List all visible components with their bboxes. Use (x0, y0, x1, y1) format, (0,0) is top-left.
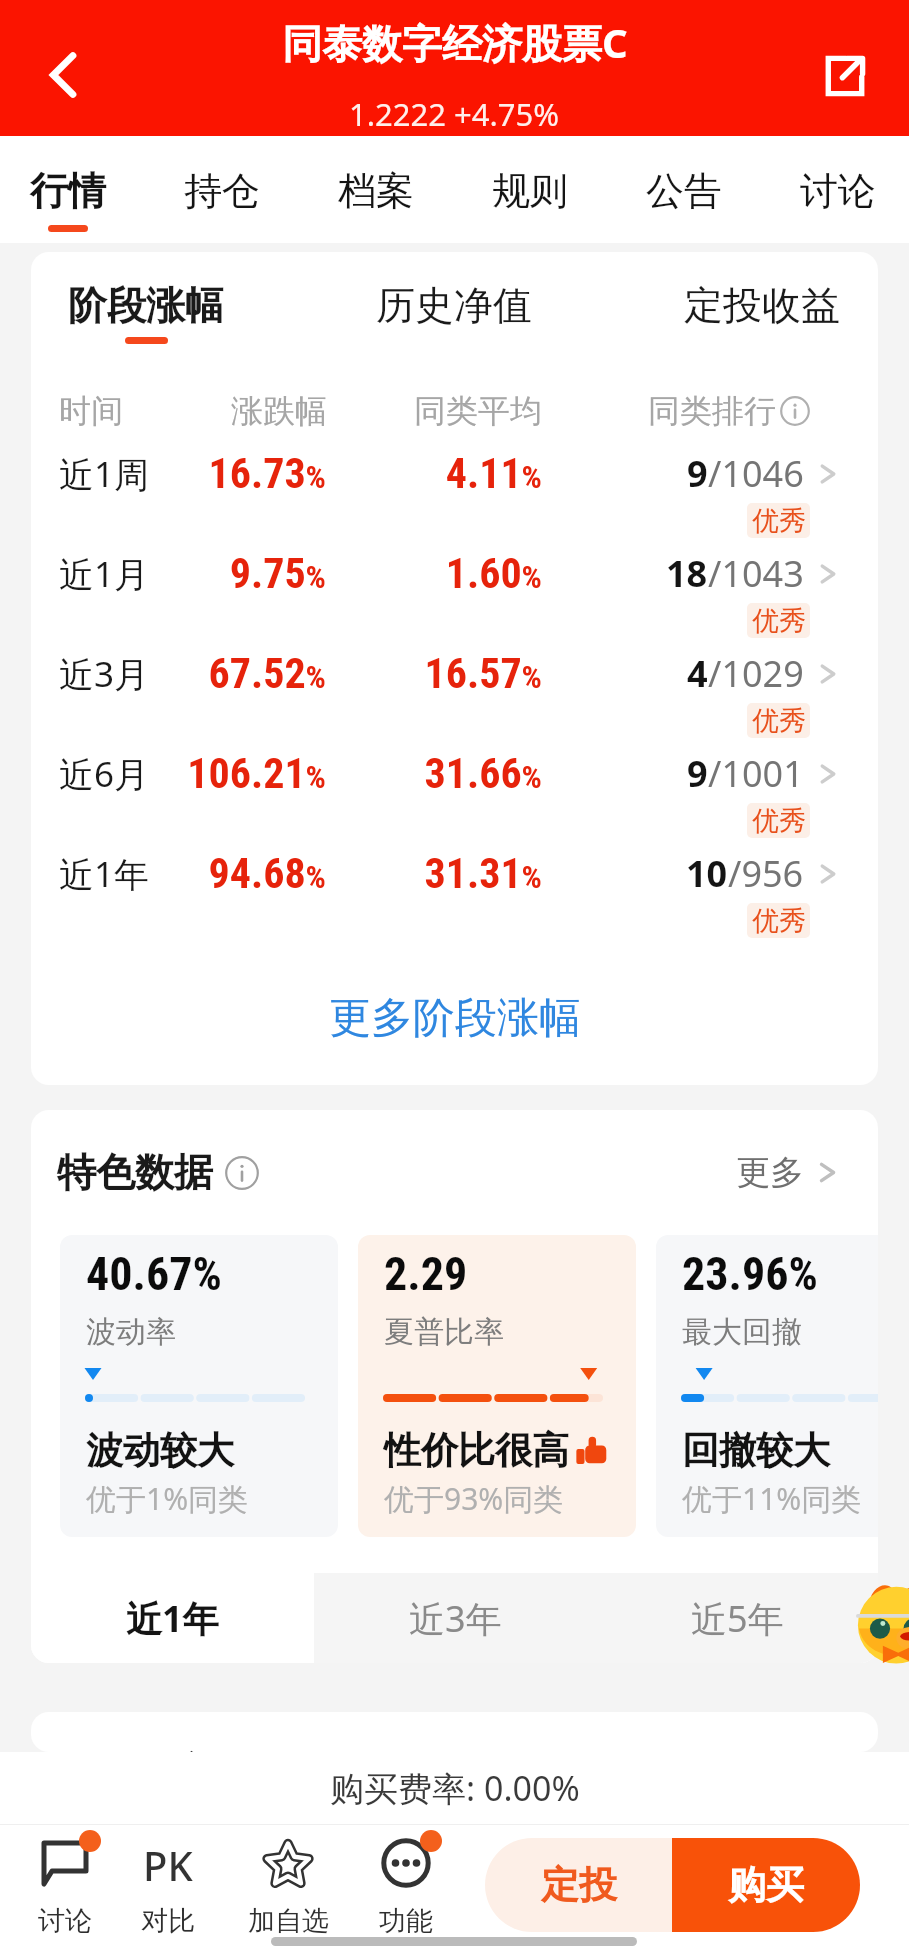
staticText: 16.73% (126, 449, 326, 498)
button[interactable]: More functions (348, 1824, 464, 1937)
staticText: 档案 (338, 167, 414, 215)
button[interactable]: Add to watchlist (230, 1824, 346, 1937)
staticText: 31.31% (342, 849, 542, 898)
other: More functions (381, 1838, 431, 1888)
staticText: 阶段涨幅 (68, 281, 224, 330)
staticText: 同类平均 (342, 391, 542, 431)
staticText: 公告 (646, 167, 722, 215)
staticText: 优于93%同类 (384, 1478, 564, 1519)
staticText: 优秀 (752, 504, 806, 538)
staticText: 优秀 (752, 604, 806, 638)
staticText: 最大回撤 (682, 1313, 802, 1351)
staticText: 同类排行 (648, 391, 776, 431)
button[interactable]: 规则 (453, 136, 607, 243)
staticText: 讨论 (800, 167, 876, 215)
staticText: 波动率 (86, 1313, 176, 1351)
staticText: 同泰数字经济股票C (282, 15, 628, 70)
button[interactable]: 23.96% (656, 1235, 878, 1537)
staticText: PK (143, 1838, 193, 1888)
staticText: 购买费率: 0.00% (330, 1765, 580, 1811)
staticText: 规则 (492, 167, 568, 215)
other: Compare (143, 1838, 193, 1888)
staticText: 历史净值 (376, 281, 532, 330)
button[interactable]: Compare (110, 1824, 226, 1937)
staticText: 9.75% (126, 549, 326, 598)
staticText: 1.2222 +4.75% (349, 93, 560, 133)
staticText: 9 (687, 749, 708, 798)
staticText: 近5年 (691, 1594, 784, 1643)
staticText: 更多阶段涨幅 (329, 992, 581, 1045)
button[interactable]: 近1月 (31, 544, 878, 644)
staticText: 定投 (541, 1861, 617, 1909)
button[interactable]: 2.29 (358, 1235, 636, 1537)
staticText: 近3年 (409, 1594, 502, 1643)
staticText: 近1年 (59, 850, 150, 898)
button[interactable]: Share (807, 38, 883, 114)
staticText: 回撤较大 (682, 1427, 830, 1474)
button[interactable]: 讨论 (761, 136, 909, 243)
button[interactable]: 近3月 (31, 644, 878, 744)
staticText: 94.68% (126, 849, 326, 898)
staticText: 持仓 (184, 167, 260, 215)
staticText: 16.57% (342, 649, 542, 698)
button[interactable]: 持仓 (145, 136, 299, 243)
staticText: 近1月 (59, 550, 150, 598)
button[interactable]: 行情 (0, 136, 145, 243)
button[interactable]: 近3年 (314, 1573, 596, 1663)
staticText: 对比 (141, 1904, 195, 1938)
staticText: /1043 (708, 549, 804, 598)
staticText: 1.60% (342, 549, 542, 598)
staticText: 23.96% (682, 1247, 818, 1301)
staticText: 讨论 (38, 1904, 92, 1938)
button[interactable]: 近1年 (31, 1573, 314, 1663)
staticText: 夏普比率 (384, 1313, 504, 1351)
staticText: 行情 (30, 167, 106, 215)
staticText: 更多 (736, 1151, 804, 1194)
button[interactable]: Back (25, 37, 101, 113)
button[interactable]: 历史净值 (376, 262, 532, 362)
staticText: 优秀 (752, 804, 806, 838)
staticText: 31.66% (342, 749, 542, 798)
button[interactable]: 近6月 (31, 744, 878, 844)
staticText: 优于1%同类 (86, 1478, 249, 1519)
staticText: 10 (686, 849, 728, 898)
button[interactable]: 定投 (485, 1838, 672, 1932)
staticText: 定投收益 (684, 281, 840, 330)
other: Add to watchlist (263, 1838, 313, 1888)
staticText: 波动较大 (86, 1427, 234, 1474)
staticText: 特色数据 (57, 1148, 213, 1197)
staticText: 近6月 (59, 750, 150, 798)
staticText: /1029 (708, 649, 804, 698)
button[interactable]: 公告 (607, 136, 761, 243)
button[interactable]: Discussion (7, 1824, 123, 1937)
button[interactable]: 购买 (672, 1838, 860, 1932)
staticText: 40.67% (86, 1247, 222, 1301)
staticText: 2.29 (384, 1247, 468, 1301)
staticText: 涨跌幅 (127, 391, 327, 431)
staticText: 基金档案 (57, 1748, 213, 1752)
staticText: 近3月 (59, 650, 150, 698)
staticText: 106.21% (126, 749, 326, 798)
button[interactable]: 40.67% (60, 1235, 338, 1537)
staticText: 4 (687, 649, 708, 698)
button[interactable]: 档案 (299, 136, 453, 243)
staticText: 功能 (379, 1904, 433, 1938)
button[interactable]: 阶段涨幅 (68, 262, 224, 362)
staticText: 时间 (59, 391, 123, 431)
staticText: /956 (728, 849, 804, 898)
staticText: 优秀 (752, 904, 806, 938)
button[interactable]: 近5年 (596, 1573, 878, 1663)
button[interactable]: 定投收益 (684, 262, 840, 362)
staticText: 4.11% (342, 449, 542, 498)
staticText: /1046 (708, 449, 804, 498)
button[interactable]: 更多阶段涨幅 (31, 981, 878, 1055)
button[interactable]: 近1年 (31, 844, 878, 944)
button[interactable]: 近1周 (31, 444, 878, 544)
button[interactable]: 更多 (736, 1146, 838, 1198)
staticText: 性价比很高 (384, 1427, 569, 1474)
staticText: /1001 (708, 749, 804, 798)
staticText: 18 (666, 549, 708, 598)
staticText: 优于11%同类 (682, 1478, 862, 1519)
other: Discussion (40, 1838, 90, 1888)
